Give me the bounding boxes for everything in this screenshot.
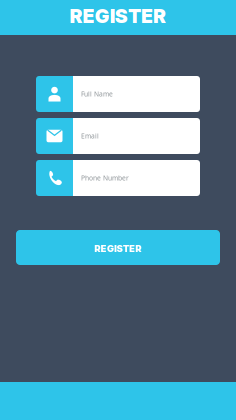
staticText: REGISTER — [70, 4, 166, 28]
button[interactable]: Email — [36, 118, 200, 154]
staticText: Phone Number — [81, 174, 129, 182]
button[interactable]: REGISTER — [16, 230, 220, 265]
staticText: REGISTER — [94, 243, 142, 254]
staticText: Full Name — [81, 90, 113, 98]
button[interactable]: Phone Number — [36, 160, 200, 196]
button[interactable]: Full Name — [36, 76, 200, 112]
staticText: Email — [81, 132, 99, 140]
